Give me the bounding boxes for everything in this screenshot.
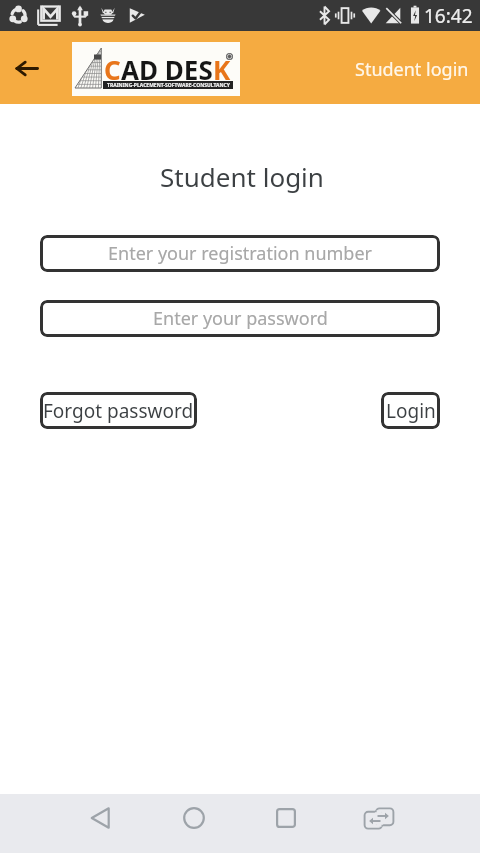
button[interactable]: Recent apps xyxy=(262,794,310,842)
staticText: 16:42 xyxy=(424,3,473,29)
button[interactable]: Enter your registration number xyxy=(40,235,440,272)
button[interactable]: Student login xyxy=(341,47,480,92)
button[interactable]: Enter your password xyxy=(40,300,440,337)
button[interactable]: Rotate screen xyxy=(355,794,403,842)
staticText: TRAINING-PLACEMENT-SOFTWARE-CONSULTANCY xyxy=(107,82,230,89)
button[interactable]: Back xyxy=(77,794,125,842)
staticText: C xyxy=(104,52,121,87)
button[interactable]: Back xyxy=(5,46,49,90)
staticText: Enter your password xyxy=(153,306,328,331)
button[interactable]: Home xyxy=(170,794,218,842)
staticText: K xyxy=(213,52,231,87)
staticText: Login xyxy=(386,398,436,424)
staticText: AD DES xyxy=(121,52,213,87)
staticText: Student login xyxy=(355,57,469,82)
staticText: Student login xyxy=(2,159,480,194)
staticText: Enter your registration number xyxy=(108,241,373,266)
button[interactable]: Forgot password xyxy=(40,392,197,429)
staticText: Forgot password xyxy=(43,398,194,424)
button[interactable]: Login xyxy=(381,392,440,429)
